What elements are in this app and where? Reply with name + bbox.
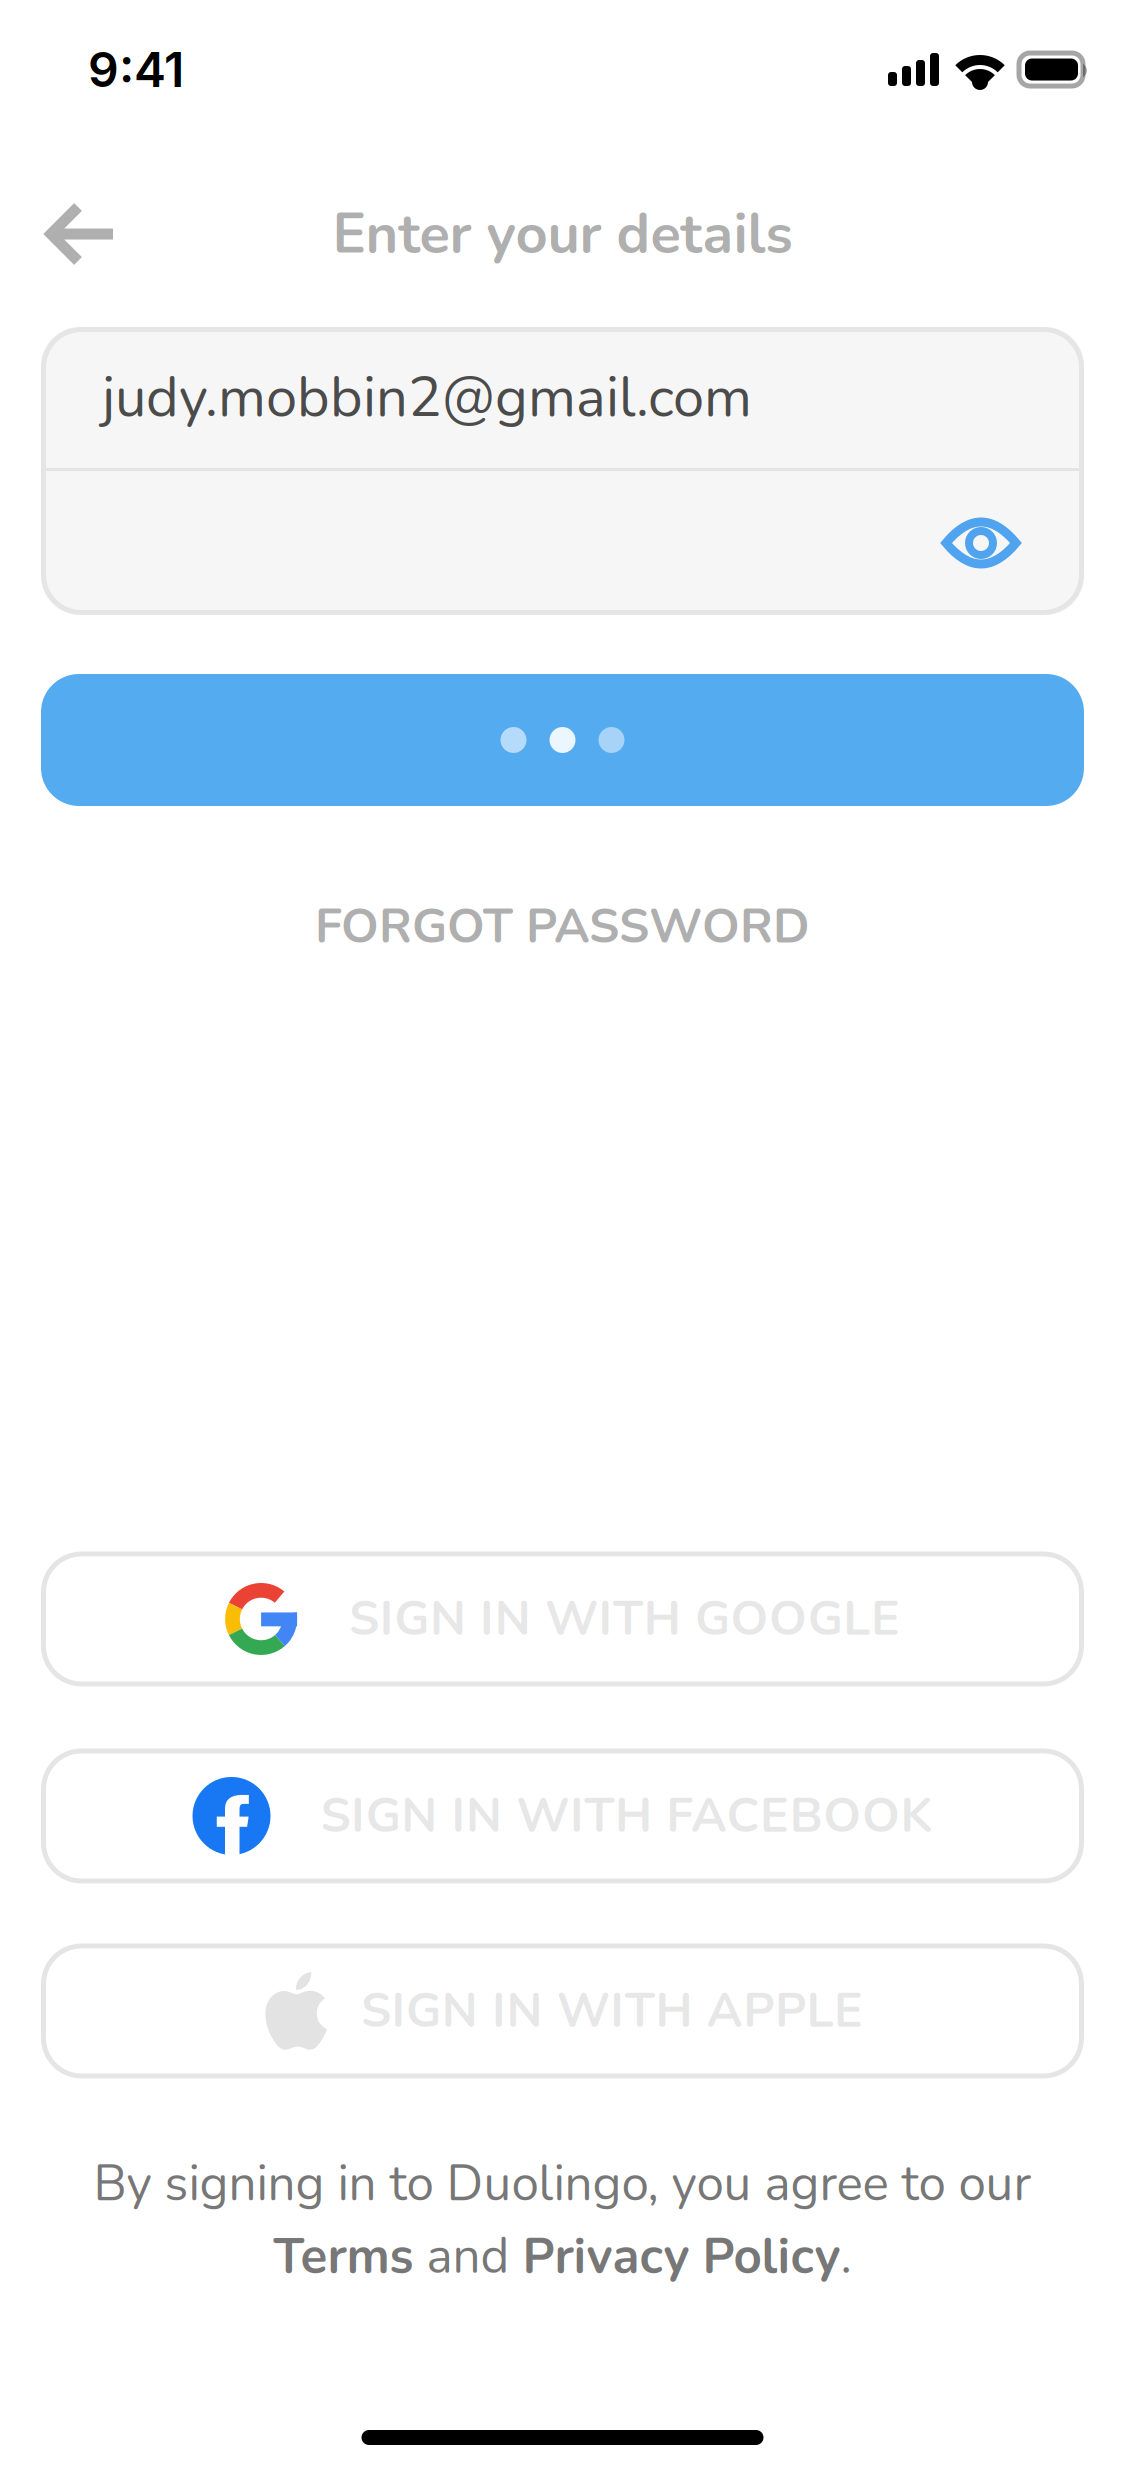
button[interactable] xyxy=(41,674,1084,806)
button[interactable]: SIGN IN WITH GOOGLE xyxy=(41,1551,1084,1686)
button[interactable]: SIGN IN WITH APPLE xyxy=(41,1943,1084,2078)
staticText: SIGN IN WITH GOOGLE xyxy=(349,1586,900,1652)
staticText: SIGN IN WITH APPLE xyxy=(361,1978,863,2044)
staticText: Terms xyxy=(273,2223,413,2290)
staticText: judy.mobbin2@gmail.com xyxy=(102,359,752,436)
staticText: . xyxy=(840,2223,851,2290)
button[interactable]: FORGOT PASSWORD xyxy=(275,864,850,989)
staticText: By signing in to Duolingo, you agree to … xyxy=(93,2150,1031,2218)
staticText: Enter your details xyxy=(332,196,792,272)
staticText: FORGOT PASSWORD xyxy=(315,894,810,959)
staticText: Privacy Policy xyxy=(522,2223,840,2290)
staticText: SIGN IN WITH FACEBOOK xyxy=(320,1783,932,1849)
button[interactable]: SIGN IN WITH FACEBOOK xyxy=(41,1748,1084,1883)
staticText: 9:41 xyxy=(88,40,184,99)
staticText: and xyxy=(413,2223,522,2290)
button[interactable]: Back xyxy=(0,179,148,289)
button[interactable]: Show password xyxy=(941,518,1021,568)
